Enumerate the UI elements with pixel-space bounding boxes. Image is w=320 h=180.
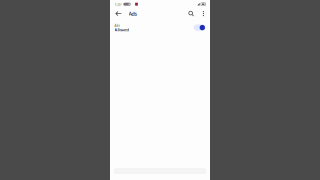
button[interactable]: More options — [200, 8, 206, 19]
staticText: 1:47 — [114, 1, 121, 7]
button[interactable]: Ads — [110, 23, 210, 34]
staticText: Ads — [114, 24, 119, 27]
button[interactable]: Back — [113, 8, 124, 19]
staticText: Ads — [128, 10, 137, 17]
button[interactable]: Search — [186, 8, 196, 19]
staticText: Allowed — [114, 27, 128, 32]
